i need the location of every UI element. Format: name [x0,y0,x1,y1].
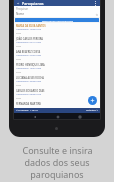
staticText: PEDRO HENRIQUE LIMA [16,63,45,66]
button[interactable]: CARLOS EDUARDO DIAS [14,88,100,101]
staticText: Ficha [16,71,22,74]
button[interactable]: JOÃO CARLOS PEREIRA [14,36,100,49]
staticText: Nascimento: 15/01/1968 [16,67,42,70]
staticText: Ficha [16,32,22,35]
staticText: Nascimento: 27/07/1990 [16,54,42,57]
staticText: paroquianos [30,168,84,180]
staticText: PESQUISAR PAROQUIANOS [42,19,73,22]
staticText: Ficha [16,45,22,48]
staticText: Nome [16,12,25,16]
staticText: Nascimento: 04/11/1982 [16,41,42,44]
button[interactable]: Mais opções [93,1,98,6]
button[interactable]: Voltar [32,114,37,119]
staticText: Ficha [16,58,22,61]
staticText: Nascimento: 30/09/1985 [16,80,42,83]
staticText: Nascimento: 08/05/1979 [16,93,42,96]
button[interactable]: Início [55,114,60,119]
staticText: < ANTERIOR 1 de 12 [16,109,38,112]
staticText: FERNANDA MARTINS [16,102,41,105]
button[interactable]: PRÓXIMO > [86,109,98,112]
button[interactable]: LUCIANA ALVES ROCHA [14,75,100,88]
staticText: Nascimento: 12/03/1975 [16,28,42,31]
staticText: MARIA DA SILVA SANTOS [16,24,46,27]
button[interactable]: Adicionar paroquiano [88,96,97,105]
button[interactable]: ANA BEATRIZ COSTA [14,49,100,62]
staticText: Consulte e insira [22,144,93,156]
button[interactable]: Recentes [77,114,82,119]
staticText: CARLOS EDUARDO DIAS [16,89,45,92]
staticText: Ficha [16,84,22,87]
staticText: Pesquisar [16,7,28,11]
staticText: LUCIANA ALVES ROCHA [16,76,45,79]
button[interactable]: PESQUISAR PAROQUIANOS [15,18,99,22]
staticText: PRÓXIMO > [86,109,98,112]
button[interactable]: Buscar [95,13,98,16]
button[interactable]: PEDRO HENRIQUE LIMA [14,62,100,75]
staticText: Ficha [16,97,22,100]
staticText: JOÃO CARLOS PEREIRA [16,37,43,40]
button[interactable]: < ANTERIOR 1 de 12 [16,109,38,112]
staticText: dados dos seus [24,156,90,168]
button[interactable]: MARIA DA SILVA SANTOS [14,23,100,36]
button[interactable]: FERNANDA MARTINS [14,101,100,108]
button[interactable]: Voltar [16,1,21,6]
staticText: Paroquianos [22,1,44,6]
staticText: ANA BEATRIZ COSTA [16,50,41,53]
